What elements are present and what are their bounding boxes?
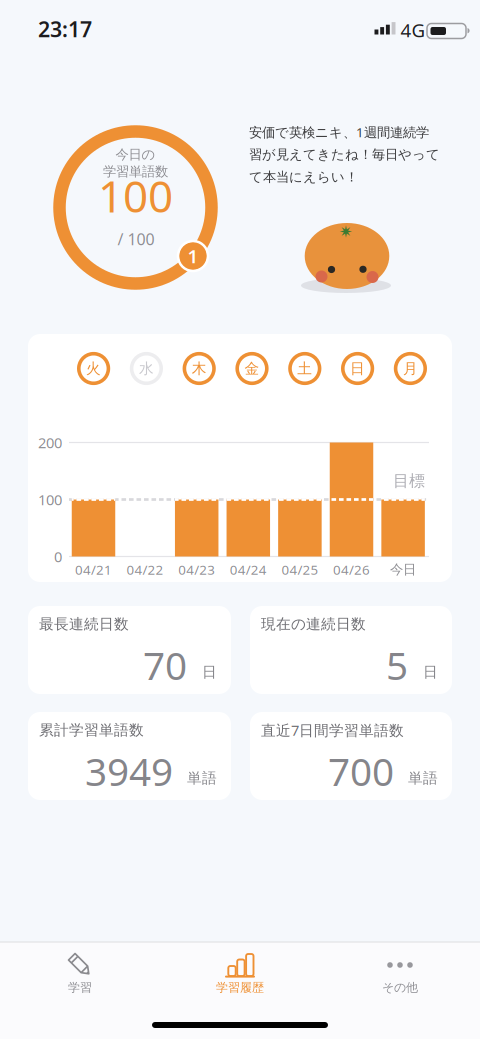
staticText: 直近7日間学習単語数 bbox=[261, 720, 404, 740]
staticText: 火 bbox=[86, 359, 101, 377]
staticText: 04/22 bbox=[127, 561, 164, 578]
staticText: 月 bbox=[403, 359, 418, 377]
staticText: 0 bbox=[54, 547, 62, 566]
staticText: 日 bbox=[350, 359, 365, 377]
staticText: 4G bbox=[400, 18, 425, 42]
staticText: 単語 bbox=[187, 769, 217, 787]
staticText: その他 bbox=[382, 980, 418, 995]
staticText: 23:17 bbox=[38, 15, 92, 43]
staticText: 土 bbox=[297, 359, 312, 377]
staticText: 学習単語数 bbox=[103, 163, 168, 180]
staticText: て本当にえらい！ bbox=[249, 169, 358, 185]
staticText: 100 bbox=[98, 166, 173, 225]
staticText: 1 bbox=[187, 244, 198, 268]
staticText: 700 bbox=[328, 745, 394, 797]
staticText: 累計学習単語数 bbox=[39, 721, 144, 739]
staticText: 目標 bbox=[393, 471, 425, 491]
button[interactable]: その他 bbox=[320, 948, 480, 1008]
button[interactable]: 学習 bbox=[0, 948, 160, 1008]
staticText: 100 bbox=[38, 490, 62, 509]
staticText: 日 bbox=[202, 663, 217, 681]
staticText: 200 bbox=[38, 433, 62, 452]
staticText: 学習 bbox=[68, 980, 92, 995]
staticText: 現在の連続日数 bbox=[261, 615, 366, 633]
staticText: 3949 bbox=[85, 745, 173, 797]
staticText: 70 bbox=[143, 639, 187, 691]
staticText: 04/23 bbox=[178, 561, 215, 578]
staticText: 水 bbox=[139, 359, 154, 377]
staticText: 習が見えてきたね！毎日やって bbox=[249, 146, 440, 163]
staticText: 04/26 bbox=[333, 561, 370, 578]
staticText: 木 bbox=[192, 359, 207, 377]
staticText: 5 bbox=[386, 639, 408, 691]
staticText: 今日の bbox=[115, 146, 155, 163]
staticText: 学習履歴 bbox=[216, 980, 264, 995]
staticText: 今日 bbox=[390, 561, 416, 578]
staticText: 04/21 bbox=[75, 561, 112, 578]
staticText: 日 bbox=[423, 663, 438, 681]
button[interactable]: 学習履歴 bbox=[160, 948, 320, 1008]
staticText: / 100 bbox=[117, 228, 154, 250]
staticText: 単語 bbox=[408, 769, 438, 787]
staticText: 安価で英検ニキ、1週間連続学 bbox=[249, 123, 429, 141]
staticText: 04/24 bbox=[230, 561, 267, 578]
staticText: 最長連続日数 bbox=[39, 615, 129, 633]
staticText: 金 bbox=[244, 359, 259, 377]
staticText: 04/25 bbox=[281, 561, 318, 578]
